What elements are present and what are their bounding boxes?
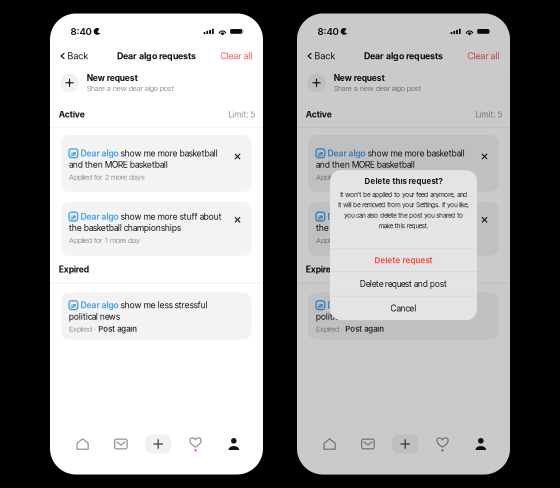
staticText: Dear algo requests <box>364 51 443 61</box>
staticText: Applied for 1 more day <box>316 236 387 245</box>
button[interactable]: Profile <box>467 432 495 456</box>
staticText: Limit: 5 <box>228 109 255 120</box>
button[interactable]: Remove request <box>231 150 243 162</box>
button[interactable]: Remove request <box>478 214 490 226</box>
button[interactable]: New post <box>145 434 171 453</box>
button[interactable]: Profile <box>220 432 248 456</box>
staticText: Dear algo <box>81 148 119 158</box>
staticText: Post again <box>98 324 137 334</box>
staticText: New request <box>334 73 385 83</box>
staticText: Back <box>68 50 89 61</box>
staticText: Applied for 1 more day <box>69 236 140 245</box>
staticText: Clear all <box>467 50 499 61</box>
button[interactable]: Home <box>316 432 344 456</box>
staticText: Post again <box>345 324 384 334</box>
staticText: Expired <box>59 264 89 274</box>
staticText: Active <box>306 109 332 120</box>
staticText: Applied for 2 more days <box>69 172 145 182</box>
staticText: show me more basketball <box>121 148 218 158</box>
staticText: Dear algo <box>328 211 366 222</box>
staticText: Delete this request? <box>364 176 442 186</box>
staticText: Dear algo <box>328 148 366 158</box>
staticText: show me more basketball <box>368 148 465 158</box>
staticText: Expired <box>306 264 336 274</box>
button[interactable]: Delete request and post <box>330 272 477 296</box>
button[interactable]: New request <box>297 68 510 102</box>
button[interactable]: Notifications <box>428 432 456 456</box>
button[interactable]: Back <box>302 46 341 65</box>
button[interactable]: Clear all <box>215 46 257 65</box>
staticText: political news <box>316 311 367 322</box>
button[interactable]: New post <box>392 434 418 453</box>
button[interactable]: Cancel <box>330 296 477 320</box>
staticText: and then MORE basketball <box>316 159 415 170</box>
staticText: Expired · <box>316 324 343 334</box>
staticText: 8:40 <box>317 26 338 37</box>
button[interactable]: Home <box>69 432 97 456</box>
staticText: Applied for 2 more days <box>316 172 392 182</box>
staticText: the basketball championships <box>316 223 428 233</box>
staticText: Share a new dear algo post <box>87 84 174 93</box>
staticText: Dear algo <box>81 211 119 222</box>
button[interactable]: Messages <box>354 432 382 456</box>
staticText: Back <box>315 50 336 61</box>
button[interactable]: Messages <box>107 432 135 456</box>
button[interactable]: Notifications <box>181 432 209 456</box>
staticText: Expired · <box>69 324 96 334</box>
staticText: the basketball championships <box>69 223 181 233</box>
staticText: show me more stuff about <box>121 211 222 222</box>
staticText: Dear algo <box>328 300 366 310</box>
staticText: Active <box>59 109 85 120</box>
staticText: It won't be applied to your feed anymore… <box>338 191 469 230</box>
button[interactable]: Back <box>55 46 94 65</box>
button[interactable]: Delete request <box>330 249 477 272</box>
staticText: show me more stuff about <box>368 211 469 222</box>
staticText: show me less stressful <box>121 300 208 310</box>
staticText: Limit: 5 <box>475 109 502 120</box>
button[interactable]: New request <box>50 68 263 102</box>
staticText: political news <box>69 311 120 322</box>
staticText: and then MORE basketball <box>69 159 168 170</box>
staticText: Dear algo requests <box>117 51 196 61</box>
staticText: Share a new dear algo post <box>334 84 421 93</box>
staticText: Cancel <box>390 303 416 313</box>
staticText: New request <box>87 73 138 83</box>
button[interactable]: Clear all <box>462 46 504 65</box>
staticText: show me less stressful <box>368 300 455 310</box>
staticText: Dear algo <box>81 300 119 310</box>
staticText: Delete request <box>374 256 432 265</box>
staticText: Clear all <box>220 50 252 61</box>
button[interactable]: Remove request <box>478 150 490 162</box>
button[interactable]: Remove request <box>231 214 243 226</box>
staticText: Delete request and post <box>360 279 447 289</box>
staticText: 8:40 <box>70 26 91 37</box>
